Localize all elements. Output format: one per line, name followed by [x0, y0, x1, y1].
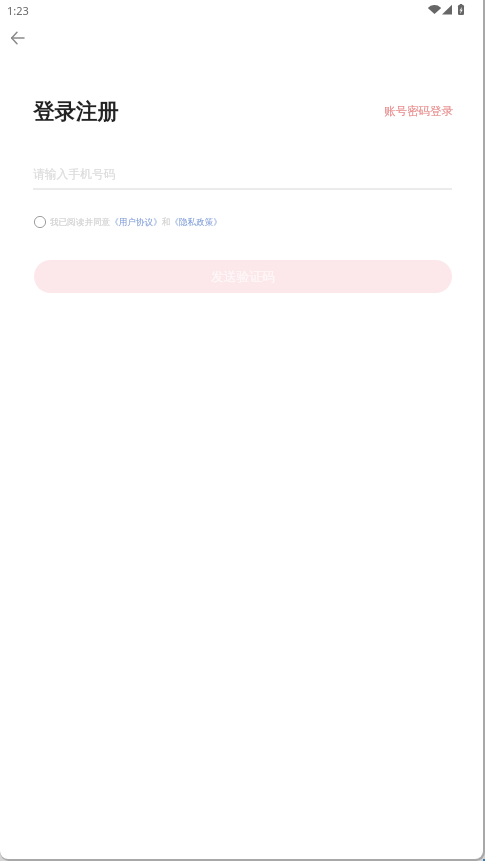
staticText: 登录注册 — [33, 98, 119, 125]
staticText: 账号密码登录 — [384, 104, 453, 118]
button[interactable]: Back — [0, 20, 35, 56]
button[interactable]: 账号密码登录 — [383, 100, 454, 122]
staticText: 我已阅读并同意《用户协议》和《隐私政策》 — [50, 217, 222, 228]
button[interactable]: 请输入手机号码 — [33, 164, 452, 188]
staticText: 1:23 — [7, 3, 29, 18]
button[interactable]: 发送验证码 — [34, 260, 452, 293]
staticText: 请输入手机号码 — [33, 167, 116, 182]
staticText: 发送验证码 — [211, 269, 275, 285]
button[interactable]: 我已阅读并同意《用户协议》和《隐私政策》 — [34, 212, 222, 232]
